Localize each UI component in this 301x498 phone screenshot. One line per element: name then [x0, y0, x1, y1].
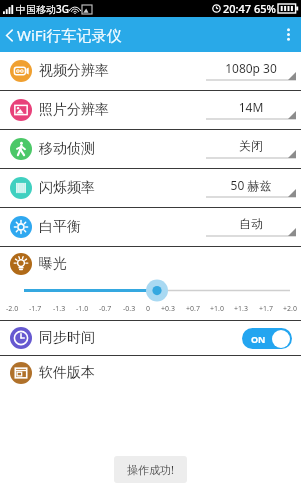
button[interactable]: More options: [276, 17, 301, 52]
staticText: 0: [146, 304, 151, 314]
staticText: 软件版本: [39, 364, 95, 382]
staticText: +1.7: [259, 304, 273, 314]
button[interactable]: 同步时间: [0, 321, 301, 355]
button[interactable]: 照片分辨率: [0, 91, 301, 129]
staticText: 视频分辨率: [39, 62, 109, 80]
staticText: +2.0: [283, 304, 297, 314]
staticText: -1.0: [76, 304, 89, 314]
staticText: +1.3: [234, 304, 248, 314]
staticText: -0.3: [123, 304, 136, 314]
button[interactable]: Sync time on: [242, 328, 292, 349]
staticText: -2.0: [6, 304, 19, 314]
button[interactable]: 移动侦测: [0, 130, 301, 168]
staticText: +0.3: [161, 304, 175, 314]
staticText: 操作成功!: [127, 462, 174, 477]
staticText: 关闭: [206, 138, 296, 153]
staticText: 闪烁频率: [39, 179, 95, 197]
staticText: -1.3: [53, 304, 66, 314]
staticText: 中国移动3G: [16, 2, 69, 16]
button[interactable]: 软件版本: [0, 356, 301, 390]
staticText: -0.7: [99, 304, 112, 314]
button[interactable]: 闪烁频率: [0, 169, 301, 207]
button[interactable]: 曝光: [0, 247, 301, 320]
staticText: 1080p 30: [206, 60, 296, 76]
staticText: 50 赫兹: [206, 177, 296, 193]
staticText: 同步时间: [39, 329, 95, 347]
button[interactable]: 白平衡: [0, 208, 301, 246]
staticText: +1.0: [210, 304, 224, 314]
staticText: 14M: [206, 99, 296, 115]
staticText: 65%: [254, 1, 276, 16]
staticText: 白平衡: [39, 218, 81, 236]
staticText: ON: [251, 333, 266, 345]
staticText: 照片分辨率: [39, 101, 109, 119]
staticText: -1.7: [29, 304, 42, 314]
button[interactable]: 视频分辨率: [0, 52, 301, 90]
staticText: 自动: [206, 216, 296, 231]
staticText: 移动侦测: [39, 140, 95, 158]
button[interactable]: Back: [0, 25, 128, 45]
staticText: 20:47: [223, 1, 252, 16]
staticText: 曝光: [39, 255, 67, 273]
staticText: +0.7: [186, 304, 200, 314]
other: Back: [5, 27, 14, 44]
staticText: WiFi行车记录仪: [17, 25, 122, 45]
